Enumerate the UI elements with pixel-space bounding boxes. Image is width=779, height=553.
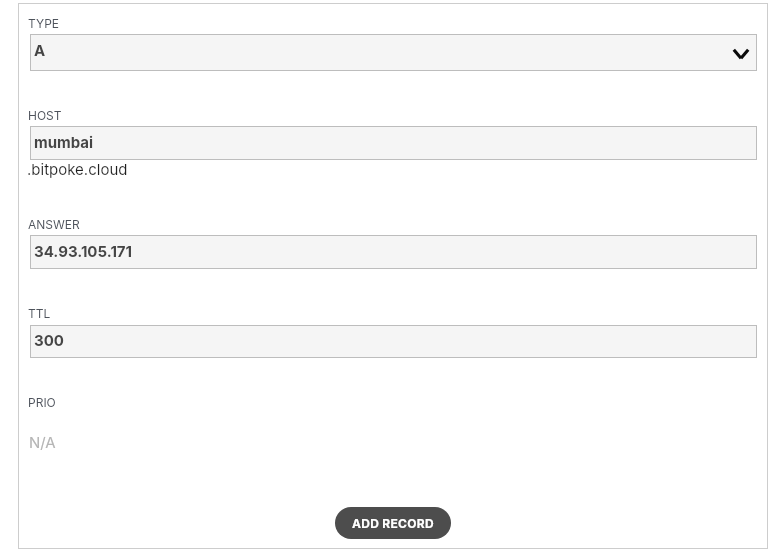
staticText: HOST xyxy=(28,108,62,123)
button[interactable]: A xyxy=(30,34,757,71)
staticText: TYPE xyxy=(28,16,60,31)
staticText: TTL xyxy=(28,306,51,321)
button[interactable]: 34.93.105.171 xyxy=(30,235,757,269)
staticText: mumbai xyxy=(34,133,94,151)
staticText: ADD RECORD xyxy=(352,516,434,531)
staticText: ANSWER xyxy=(28,217,80,232)
staticText: PRIO xyxy=(28,395,56,410)
button[interactable]: 300 xyxy=(30,325,757,358)
button[interactable]: mumbai xyxy=(30,126,757,160)
staticText: A xyxy=(34,41,46,59)
button[interactable]: ADD RECORD xyxy=(335,507,451,539)
staticText: 300 xyxy=(34,331,64,349)
staticText: 34.93.105.171 xyxy=(34,242,133,260)
button[interactable]: Open record type dropdown xyxy=(732,47,750,61)
staticText: .bitpoke.cloud xyxy=(27,160,128,178)
button[interactable]: N/A xyxy=(30,426,757,459)
staticText: N/A xyxy=(29,433,56,451)
